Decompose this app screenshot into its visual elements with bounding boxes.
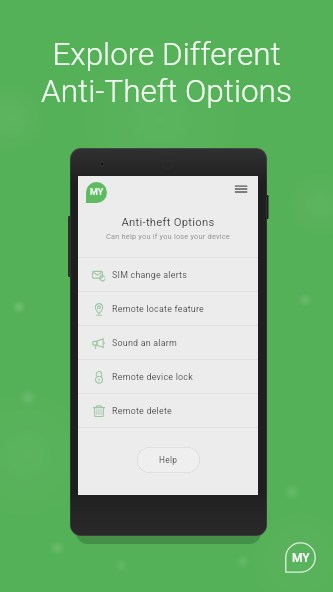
staticText: Help	[159, 455, 178, 465]
button[interactable]: Help	[137, 447, 200, 473]
staticText: Anti-theft Options	[78, 216, 258, 229]
staticText: SIM change alerts	[112, 270, 188, 280]
staticText: Explore Different	[52, 36, 281, 73]
staticText: Remote device lock	[112, 372, 193, 382]
button[interactable]: MY	[86, 182, 107, 203]
staticText: Can help you if you lose your device	[78, 232, 258, 241]
staticText: MY	[90, 187, 104, 198]
staticText: Remote delete	[112, 406, 172, 416]
button[interactable]: Sound an alarm	[78, 326, 258, 359]
staticText: MY	[292, 551, 310, 565]
button[interactable]: Open menu	[232, 180, 252, 200]
staticText: Sound an alarm	[112, 338, 178, 348]
staticText: Remote locate feature	[112, 304, 205, 314]
button[interactable]: Remote locate feature	[78, 292, 258, 325]
staticText: Anti-Theft Options	[41, 73, 292, 110]
button[interactable]: SIM change alerts	[78, 258, 258, 291]
button[interactable]: Remote delete	[78, 394, 258, 427]
button[interactable]: Remote device lock	[78, 360, 258, 393]
